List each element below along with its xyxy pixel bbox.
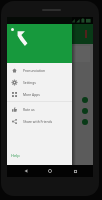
button[interactable] [7, 116, 88, 127]
button[interactable]: Rate us [7, 103, 72, 115]
button[interactable]: Home [44, 165, 56, 177]
staticText: Rate us [23, 107, 35, 111]
staticText: Settings [23, 80, 36, 84]
staticText: Help [11, 153, 20, 158]
button[interactable]: Pronunciation [7, 64, 72, 76]
button[interactable]: Settings [7, 76, 72, 88]
button[interactable]: Recent apps [69, 165, 81, 177]
staticText: More Apps [23, 92, 40, 96]
button[interactable]: Help [11, 153, 20, 158]
button[interactable] [7, 94, 88, 105]
button[interactable] [10, 46, 90, 62]
staticText: Share with Friends [23, 119, 53, 123]
staticText: Pronunciation [23, 68, 46, 72]
button[interactable]: More Apps [7, 88, 72, 100]
button[interactable] [7, 105, 88, 116]
button[interactable]: Share with Friends [7, 115, 72, 127]
button[interactable]: Back [20, 165, 32, 177]
